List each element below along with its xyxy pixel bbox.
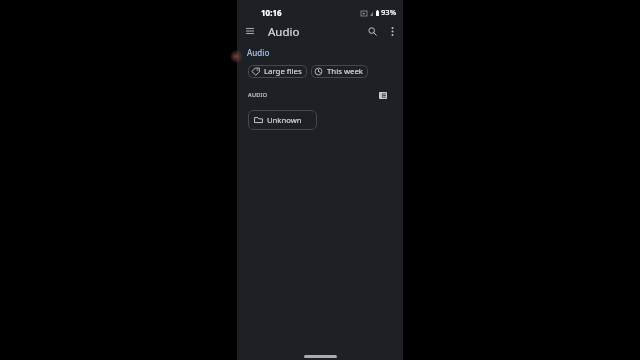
button[interactable]: Large files — [248, 65, 307, 78]
staticText: 93% — [381, 7, 397, 17]
button[interactable]: More options — [384, 23, 400, 39]
button[interactable]: This week — [311, 65, 368, 78]
button[interactable]: Search — [364, 23, 380, 39]
button[interactable]: Change view — [377, 89, 389, 101]
button[interactable]: Audio — [247, 47, 270, 58]
staticText: Large files — [264, 66, 302, 77]
staticText: Unknown — [267, 115, 302, 125]
button[interactable]: Navigation menu — [241, 22, 259, 40]
staticText: Audio — [268, 24, 300, 40]
button[interactable]: Unknown — [248, 110, 317, 130]
staticText: This week — [327, 66, 364, 77]
staticText: 10:16 — [261, 7, 282, 18]
staticText: AUDIO — [248, 91, 268, 98]
